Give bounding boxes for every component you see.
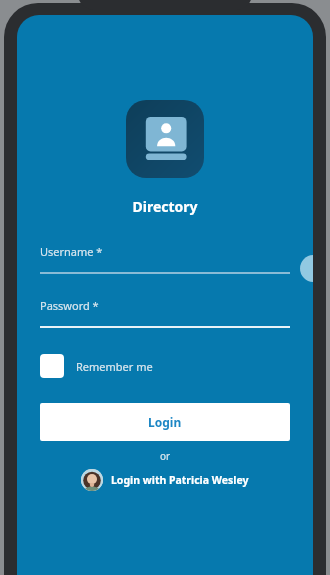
button[interactable]: Username *	[40, 244, 290, 274]
staticText: Password *	[40, 298, 99, 313]
staticText: Username *	[40, 244, 103, 259]
button[interactable]: Patricia Wesley avatar	[81, 469, 249, 491]
other: Patricia Wesley avatar	[81, 469, 103, 491]
staticText: Remember me	[76, 359, 153, 374]
button[interactable]: Login	[40, 403, 290, 441]
staticText: Login	[148, 414, 182, 430]
staticText: Login with Patricia Wesley	[111, 473, 249, 487]
staticText: or	[160, 449, 171, 463]
staticText: Directory	[132, 197, 198, 216]
button[interactable]: Password *	[40, 298, 290, 328]
button[interactable]: Remember me	[40, 354, 290, 378]
